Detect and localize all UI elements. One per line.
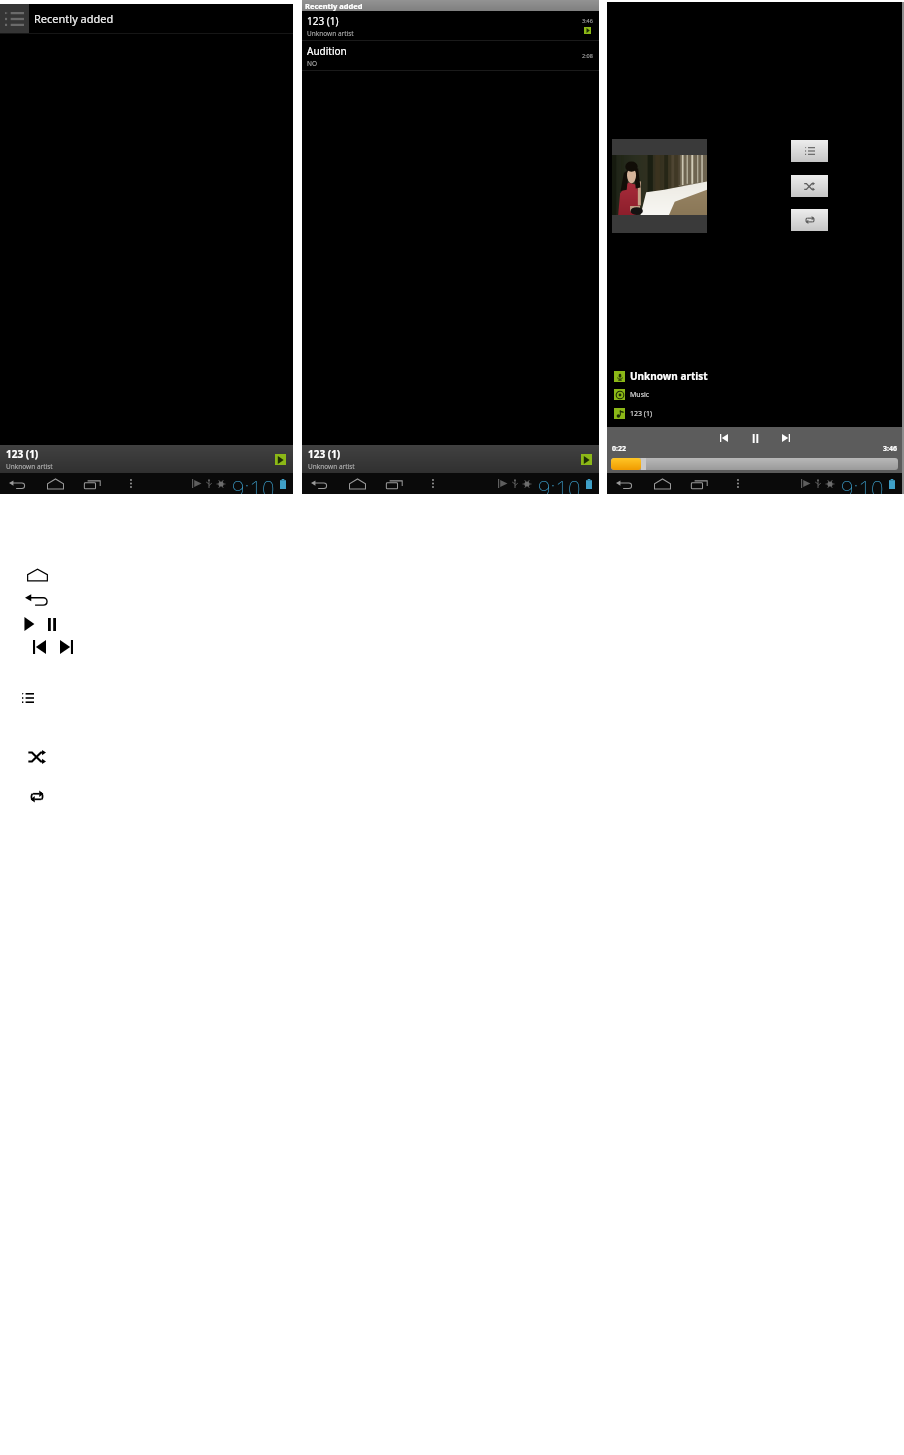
staticText: Recently added [34, 11, 114, 26]
staticText: 0:22 [612, 444, 626, 454]
button[interactable]: Repeat [791, 209, 828, 231]
button[interactable]: Menu [125, 473, 137, 494]
staticText: 9:10 [538, 473, 581, 494]
staticText: 9:10 [841, 473, 884, 494]
button[interactable]: Home [348, 473, 367, 494]
button[interactable]: Recents [385, 473, 405, 494]
staticText: 9:10 [232, 473, 275, 494]
button[interactable]: Menu [427, 473, 439, 494]
staticText: Unknown artist [6, 462, 53, 471]
button[interactable]: Pause [744, 430, 766, 446]
staticText: 3:46 [582, 17, 593, 24]
button[interactable]: Music [614, 389, 650, 400]
button[interactable]: Shuffle [791, 175, 828, 197]
button[interactable]: 123 (1) [614, 408, 653, 419]
button[interactable]: Home [653, 473, 672, 494]
button[interactable]: 123 (1) [302, 445, 599, 473]
button[interactable]: Recents [83, 473, 103, 494]
button[interactable]: Play [275, 454, 286, 465]
staticText: 123 (1) [307, 14, 339, 28]
button[interactable]: Previous [713, 430, 735, 446]
staticText: Music [630, 390, 650, 400]
staticText: Unknown artist [630, 369, 708, 383]
staticText: Unknown artist [308, 462, 355, 471]
staticText: Audition [307, 44, 347, 58]
button[interactable]: Recently added [0, 4, 29, 33]
button[interactable]: Back [615, 473, 634, 494]
button[interactable]: Back [310, 473, 329, 494]
button[interactable]: Next [775, 430, 797, 446]
staticText: 123 (1) [308, 447, 341, 461]
button[interactable]: Playlist [791, 140, 828, 162]
staticText: NO [307, 59, 318, 68]
button[interactable]: Recents [690, 473, 710, 494]
staticText: 123 (1) [630, 409, 653, 419]
button[interactable]: 123 (1) [302, 11, 599, 40]
staticText: 123 (1) [6, 447, 39, 461]
staticText: 3:46 [883, 444, 897, 454]
button[interactable]: Menu [732, 473, 744, 494]
staticText: Recently added [305, 1, 363, 11]
button[interactable]: Home [46, 473, 65, 494]
button[interactable]: Play [581, 454, 592, 465]
staticText: Unknown artist [307, 29, 354, 38]
button[interactable]: 123 (1) [0, 445, 293, 473]
button[interactable]: Unknown artist [614, 369, 708, 383]
staticText: 2:08 [582, 52, 593, 59]
button[interactable]: Back [8, 473, 27, 494]
button[interactable]: Audition [302, 41, 599, 70]
